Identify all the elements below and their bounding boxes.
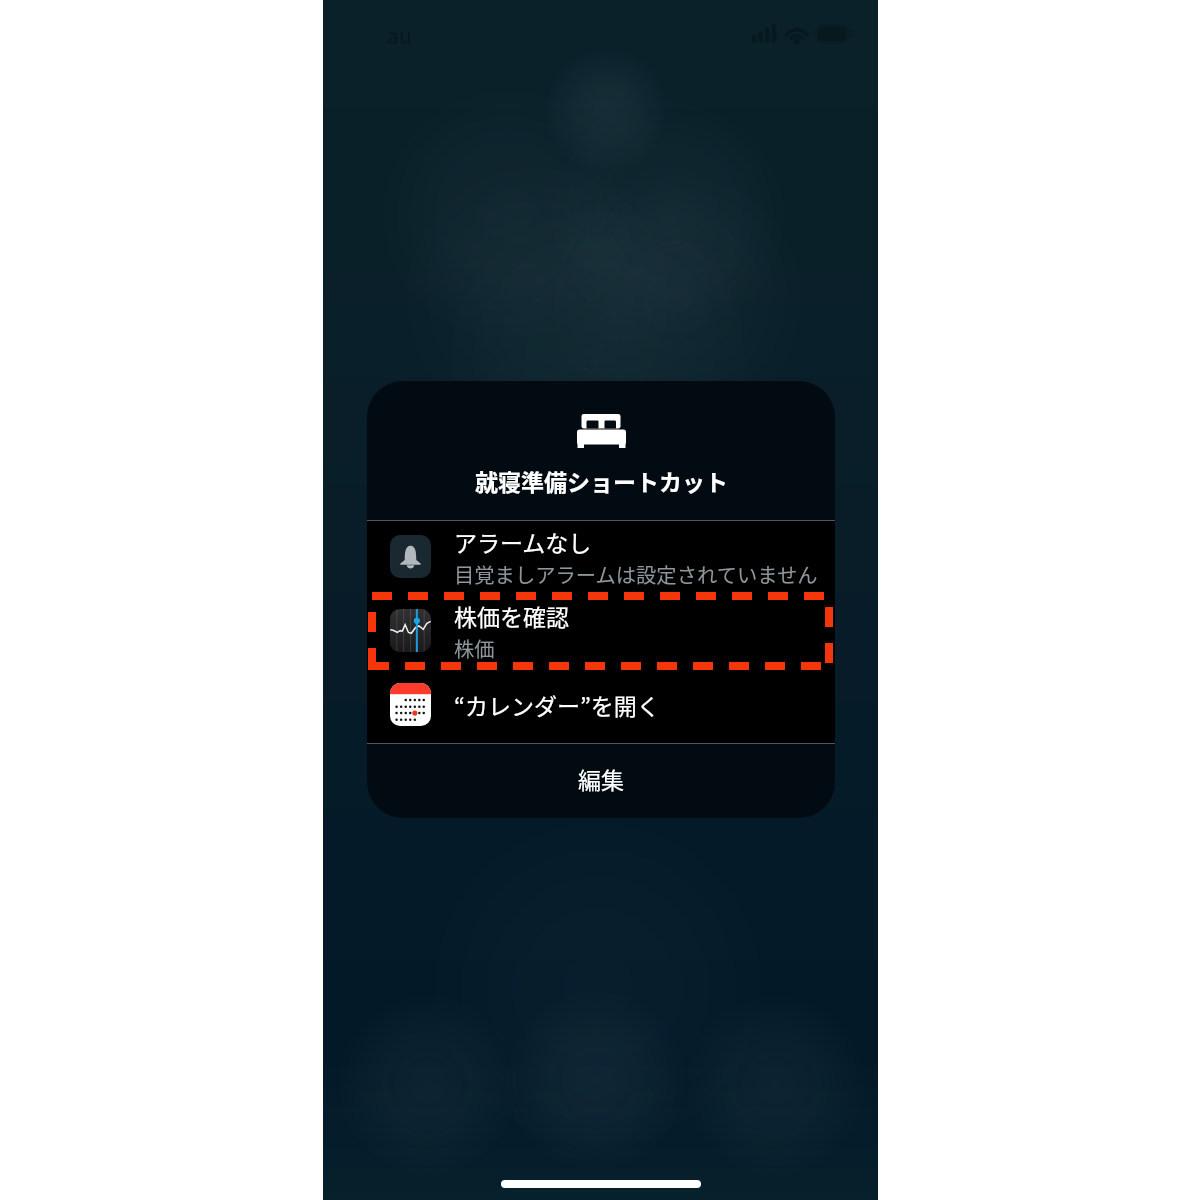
button[interactable]: Stocks: [367, 595, 835, 669]
staticText: 目覚ましアラームは設定されていません: [454, 559, 818, 588]
other: Home indicator: [501, 1180, 701, 1188]
other: Bedtime: [577, 414, 626, 448]
other: Stocks: [390, 609, 431, 652]
staticText: 編集: [578, 762, 624, 795]
staticText: 株価: [454, 633, 495, 662]
button[interactable]: 編集: [367, 744, 835, 818]
other: Signal, Wi-Fi and battery status: [752, 22, 872, 48]
staticText: アラームなし: [454, 525, 592, 558]
other: Highlighted shortcut row: [368, 592, 833, 670]
other: Alarm: [390, 535, 431, 578]
button[interactable]: Alarm: [367, 521, 835, 595]
staticText: “カレンダー”を開く: [454, 688, 660, 721]
other: Calendar: [390, 683, 431, 726]
staticText: 就寝準備ショートカット: [475, 464, 728, 497]
staticText: au: [387, 20, 413, 50]
button[interactable]: Calendar: [367, 669, 835, 743]
staticText: 株価を確認: [454, 599, 569, 632]
